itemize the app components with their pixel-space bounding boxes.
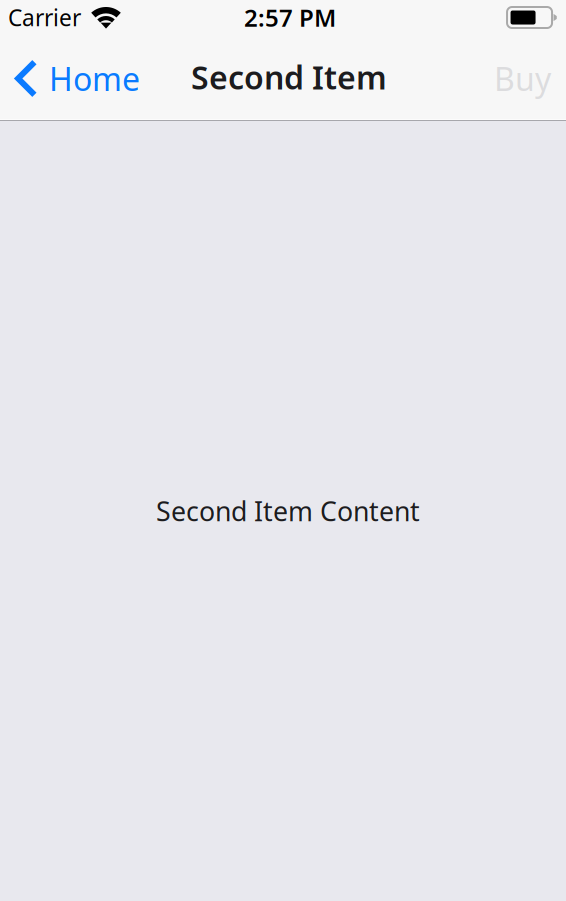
button[interactable]: Buy <box>482 35 566 119</box>
staticText: Second Item <box>191 56 387 98</box>
button[interactable]: Home <box>0 35 150 119</box>
staticText: Home <box>49 57 140 100</box>
staticText: Carrier <box>8 2 81 32</box>
staticText: 2:57 PM <box>244 2 336 33</box>
staticText: Buy <box>494 57 551 100</box>
staticText: Second Item Content <box>156 493 420 529</box>
